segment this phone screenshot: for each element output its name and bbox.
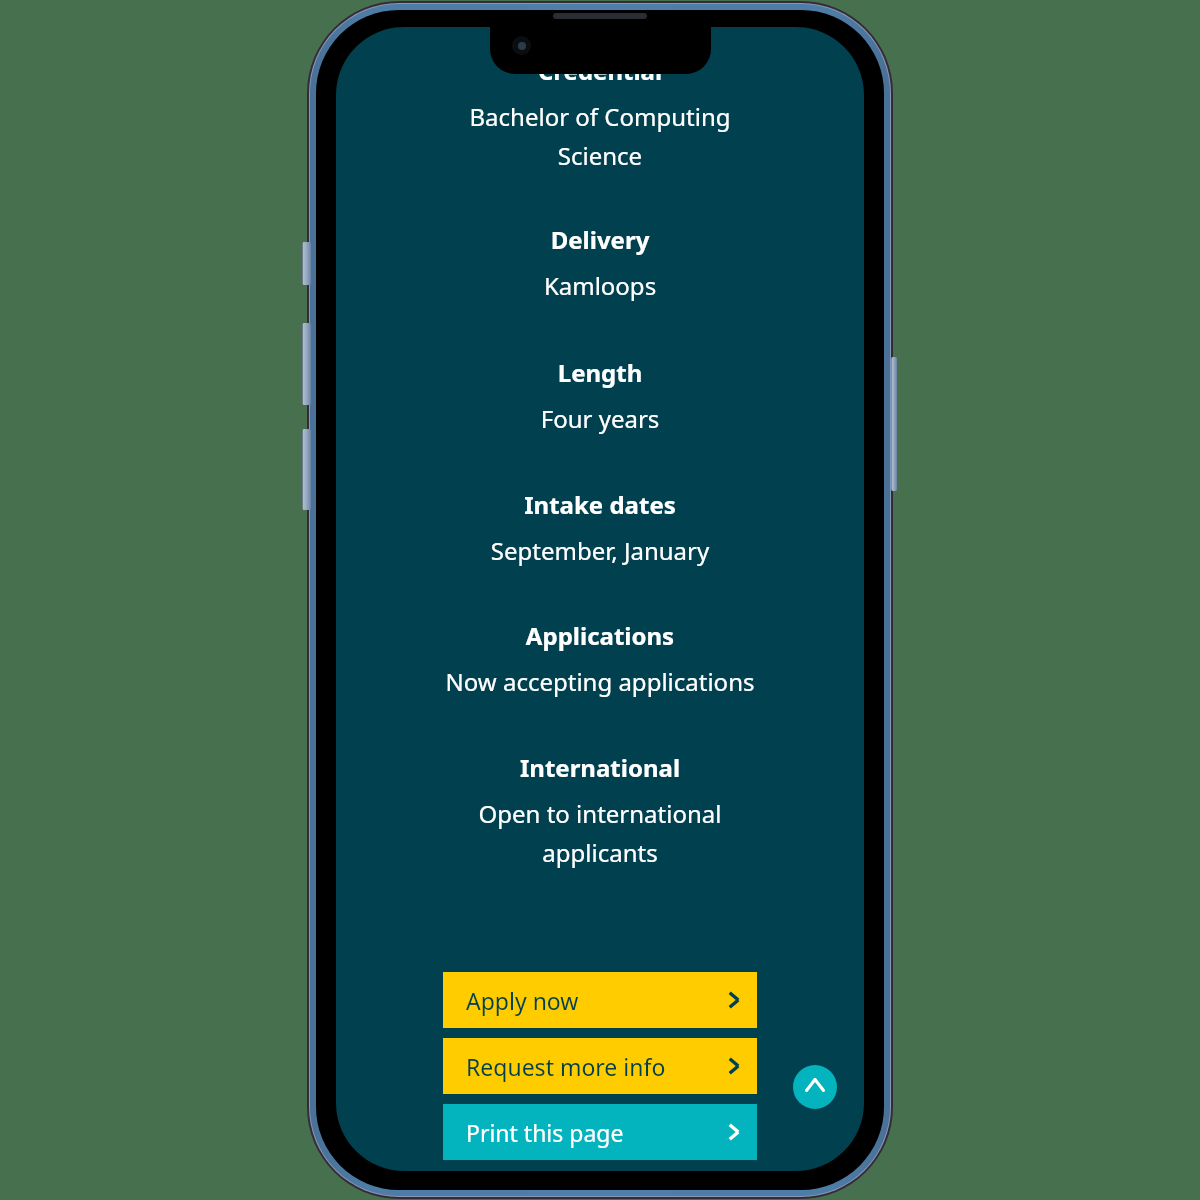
staticText: Applications	[443, 619, 757, 652]
staticText: Four years	[443, 402, 757, 435]
button[interactable]: Request more info	[443, 1038, 757, 1094]
button[interactable]: Apply now	[443, 972, 757, 1028]
staticText: Open to international applicants	[443, 797, 757, 869]
staticText: Apply now	[466, 985, 579, 1016]
staticText: Print this page	[466, 1117, 624, 1148]
staticText: Now accepting applications	[443, 665, 757, 698]
button[interactable]: Print this page	[443, 1104, 757, 1160]
staticText: Delivery	[443, 223, 757, 256]
staticText: Intake dates	[443, 488, 757, 521]
staticText: Length	[443, 356, 757, 389]
staticText: September, January	[443, 534, 757, 567]
staticText: Request more info	[466, 1051, 666, 1082]
staticText: Credential	[443, 54, 757, 87]
staticText: Kamloops	[443, 269, 757, 302]
staticText: International	[443, 751, 757, 784]
button[interactable]: Scroll to top	[793, 1065, 837, 1109]
staticText: Bachelor of Computing Science	[443, 100, 757, 172]
